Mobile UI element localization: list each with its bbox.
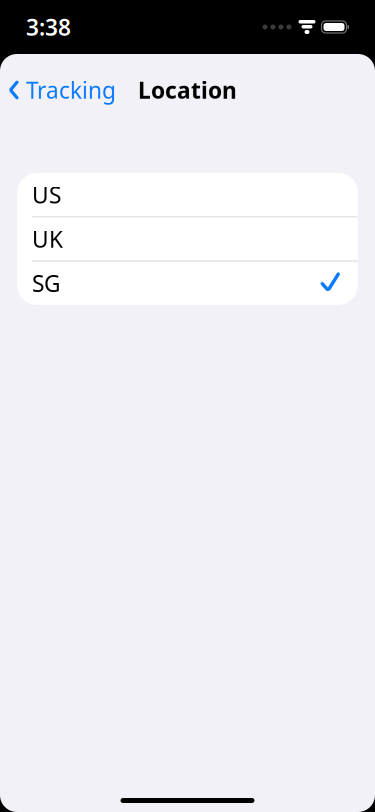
staticText: Location: [138, 75, 237, 105]
button[interactable]: SG: [17, 261, 358, 305]
staticText: 3:38: [26, 12, 71, 42]
staticText: Tracking: [26, 75, 116, 105]
staticText: SG: [32, 268, 61, 298]
staticText: US: [32, 180, 61, 210]
button[interactable]: US: [17, 173, 358, 216]
button[interactable]: UK: [17, 217, 358, 261]
staticText: UK: [32, 224, 63, 254]
button[interactable]: Tracking: [0, 69, 116, 111]
